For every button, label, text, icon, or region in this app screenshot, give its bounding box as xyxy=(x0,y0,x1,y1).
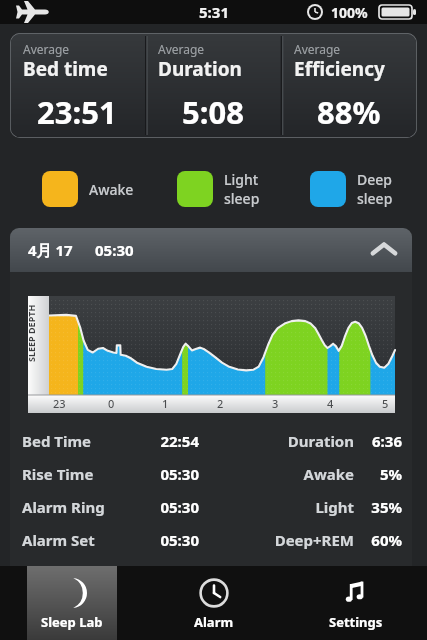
staticText: Settings xyxy=(329,613,383,631)
staticText: 05:30 xyxy=(127,530,199,550)
staticText: 05:30 xyxy=(127,464,199,484)
staticText: 100% xyxy=(331,3,368,22)
button[interactable]: 4月 17 xyxy=(10,228,412,272)
button[interactable]: Alarm Ring xyxy=(10,490,412,523)
staticText: Bed time xyxy=(23,56,108,82)
button[interactable]: Deep xyxy=(310,168,393,210)
staticText: 6:36 xyxy=(364,431,402,451)
staticText: 05:30 xyxy=(127,497,199,517)
staticText: 35% xyxy=(364,497,402,517)
staticText: 4月 17 xyxy=(28,240,73,260)
staticText: Deep xyxy=(357,170,392,189)
button[interactable]: Awake xyxy=(42,168,134,210)
button[interactable]: Sleep Lab xyxy=(27,566,117,640)
staticText: Alarm Ring xyxy=(22,497,127,517)
other: Settings xyxy=(341,578,371,608)
staticText: 05:30 xyxy=(95,240,134,260)
staticText: 4 xyxy=(327,396,334,411)
button[interactable]: Alarm Set xyxy=(10,523,412,556)
staticText: 23 xyxy=(53,396,66,411)
staticText: sleep xyxy=(357,189,393,208)
staticText: Light xyxy=(199,497,354,517)
staticText: Duration xyxy=(199,431,354,451)
staticText: Average xyxy=(158,41,205,57)
staticText: 3 xyxy=(272,396,279,411)
staticText: 1 xyxy=(162,396,169,411)
staticText: Rise Time xyxy=(22,464,127,484)
staticText: 2 xyxy=(217,396,224,411)
staticText: 0 xyxy=(108,396,115,411)
staticText: Average xyxy=(23,41,70,57)
staticText: sleep xyxy=(224,189,260,208)
staticText: 5:08 xyxy=(182,91,244,133)
staticText: Average xyxy=(294,41,341,57)
other: Alarm xyxy=(199,578,229,608)
staticText: Alarm xyxy=(194,613,234,631)
staticText: Deep+REM xyxy=(199,530,354,550)
staticText: 23:51 xyxy=(37,91,117,133)
staticText: Light xyxy=(224,170,259,189)
button[interactable]: Bed Time xyxy=(10,424,412,457)
staticText: Efficiency xyxy=(294,56,385,82)
button[interactable]: Collapse session xyxy=(370,236,398,264)
staticText: Awake xyxy=(199,464,354,484)
staticText: SLEEP DEPTH xyxy=(25,304,37,362)
staticText: 5% xyxy=(364,464,402,484)
staticText: 88% xyxy=(317,91,381,133)
other: Sleep Lab xyxy=(57,578,87,608)
staticText: 5 xyxy=(382,396,389,411)
staticText: Awake xyxy=(89,180,134,199)
button[interactable]: SLEEP DEPTH xyxy=(28,296,395,413)
staticText: Alarm Set xyxy=(22,530,127,550)
staticText: 5:31 xyxy=(199,2,229,22)
staticText: Duration xyxy=(158,56,242,82)
button[interactable]: Rise Time xyxy=(10,457,412,490)
staticText: Sleep Lab xyxy=(41,613,103,631)
staticText: Bed Time xyxy=(22,431,127,451)
button[interactable]: Average xyxy=(10,33,417,138)
staticText: 22:54 xyxy=(127,431,199,451)
button[interactable]: Alarm xyxy=(169,566,259,640)
button[interactable]: Settings xyxy=(311,566,401,640)
staticText: 60% xyxy=(364,530,402,550)
button[interactable]: Light xyxy=(177,168,260,210)
